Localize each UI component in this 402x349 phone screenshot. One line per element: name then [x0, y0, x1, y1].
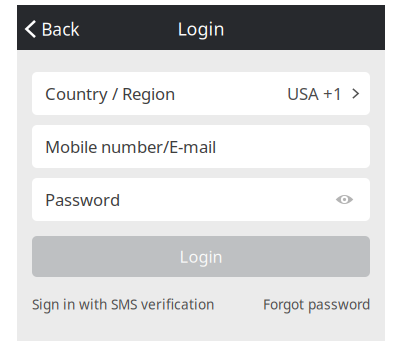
button[interactable]: Back	[17, 5, 107, 50]
button[interactable]: Mobile number/E-mail	[32, 125, 370, 168]
button[interactable]: Password	[32, 178, 370, 221]
staticText: Login	[177, 16, 224, 41]
button[interactable]: Login	[32, 236, 370, 277]
staticText: Password	[45, 188, 120, 211]
staticText: Mobile number/E-mail	[45, 135, 216, 158]
staticText: Forgot password	[263, 295, 370, 313]
button[interactable]: Forgot password	[263, 295, 370, 313]
staticText: Back	[41, 17, 79, 41]
staticText: Login	[179, 245, 222, 268]
staticText: USA +1	[287, 82, 343, 105]
staticText: Country / Region	[45, 82, 175, 105]
button[interactable]: Country / Region	[32, 72, 370, 115]
staticText: Sign in with SMS verification	[32, 295, 214, 313]
button[interactable]: Sign in with SMS verification	[32, 295, 214, 313]
